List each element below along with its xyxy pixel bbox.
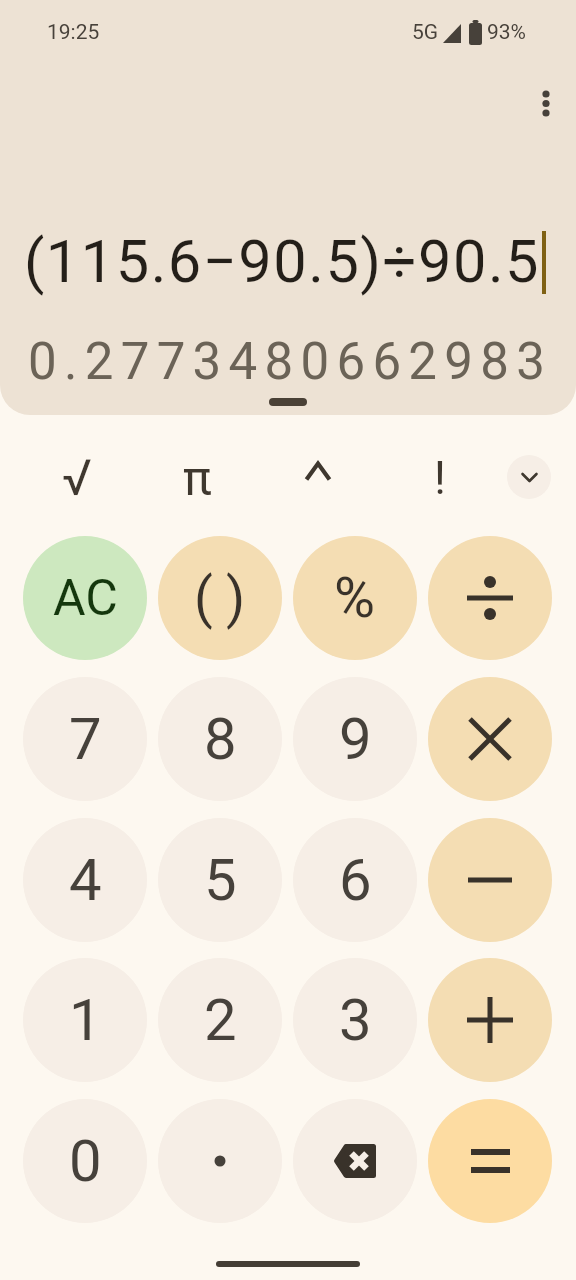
button[interactable] [288, 441, 348, 501]
staticText: (115.6−90.5)÷90.5 [24, 227, 541, 297]
button[interactable]: 0 [23, 1099, 147, 1223]
staticText: 3 [339, 986, 372, 1054]
staticText: 4 [69, 846, 102, 914]
button[interactable] [428, 536, 552, 660]
staticText: AC [53, 569, 118, 628]
staticText: ! [434, 451, 446, 505]
staticText: 0.2773480662983 [28, 332, 553, 392]
staticText: 1 [69, 986, 102, 1054]
staticText: 2 [204, 986, 237, 1054]
button[interactable]: 4 [23, 818, 147, 942]
button[interactable] [428, 818, 552, 942]
button[interactable] [293, 1099, 417, 1223]
staticText: 9 [339, 705, 372, 773]
button[interactable]: 6 [293, 818, 417, 942]
staticText: 8 [204, 705, 237, 773]
button[interactable]: % [293, 536, 417, 660]
button[interactable]: 1 [23, 958, 147, 1082]
button[interactable]: 7 [23, 677, 147, 801]
button[interactable]: 2 [158, 958, 282, 1082]
staticText: 19:25 [47, 20, 100, 45]
staticText: 0 [69, 1127, 102, 1195]
button[interactable] [428, 1099, 552, 1223]
button[interactable]: ( [158, 536, 282, 660]
button[interactable] [428, 958, 552, 1082]
button[interactable] [158, 1099, 282, 1223]
button[interactable]: 3 [293, 958, 417, 1082]
staticText: 7 [69, 705, 102, 773]
button[interactable] [507, 455, 551, 499]
staticText: 6 [339, 846, 372, 914]
button[interactable] [428, 677, 552, 801]
button[interactable]: π [167, 448, 227, 508]
button[interactable]: AC [23, 536, 147, 660]
staticText: 5 [204, 846, 237, 914]
button[interactable]: 9 [293, 677, 417, 801]
button[interactable]: ! [410, 448, 470, 508]
staticText: π [183, 450, 212, 506]
button[interactable] [528, 84, 564, 122]
staticText: √ [62, 449, 92, 508]
button[interactable]: 5 [158, 818, 282, 942]
staticText: ) [226, 566, 246, 630]
staticText: ( [194, 566, 213, 630]
staticText: 93% [487, 20, 526, 45]
button[interactable]: √ [47, 448, 107, 508]
staticText: % [334, 565, 376, 631]
button[interactable]: 8 [158, 677, 282, 801]
staticText: 5G [412, 20, 439, 45]
